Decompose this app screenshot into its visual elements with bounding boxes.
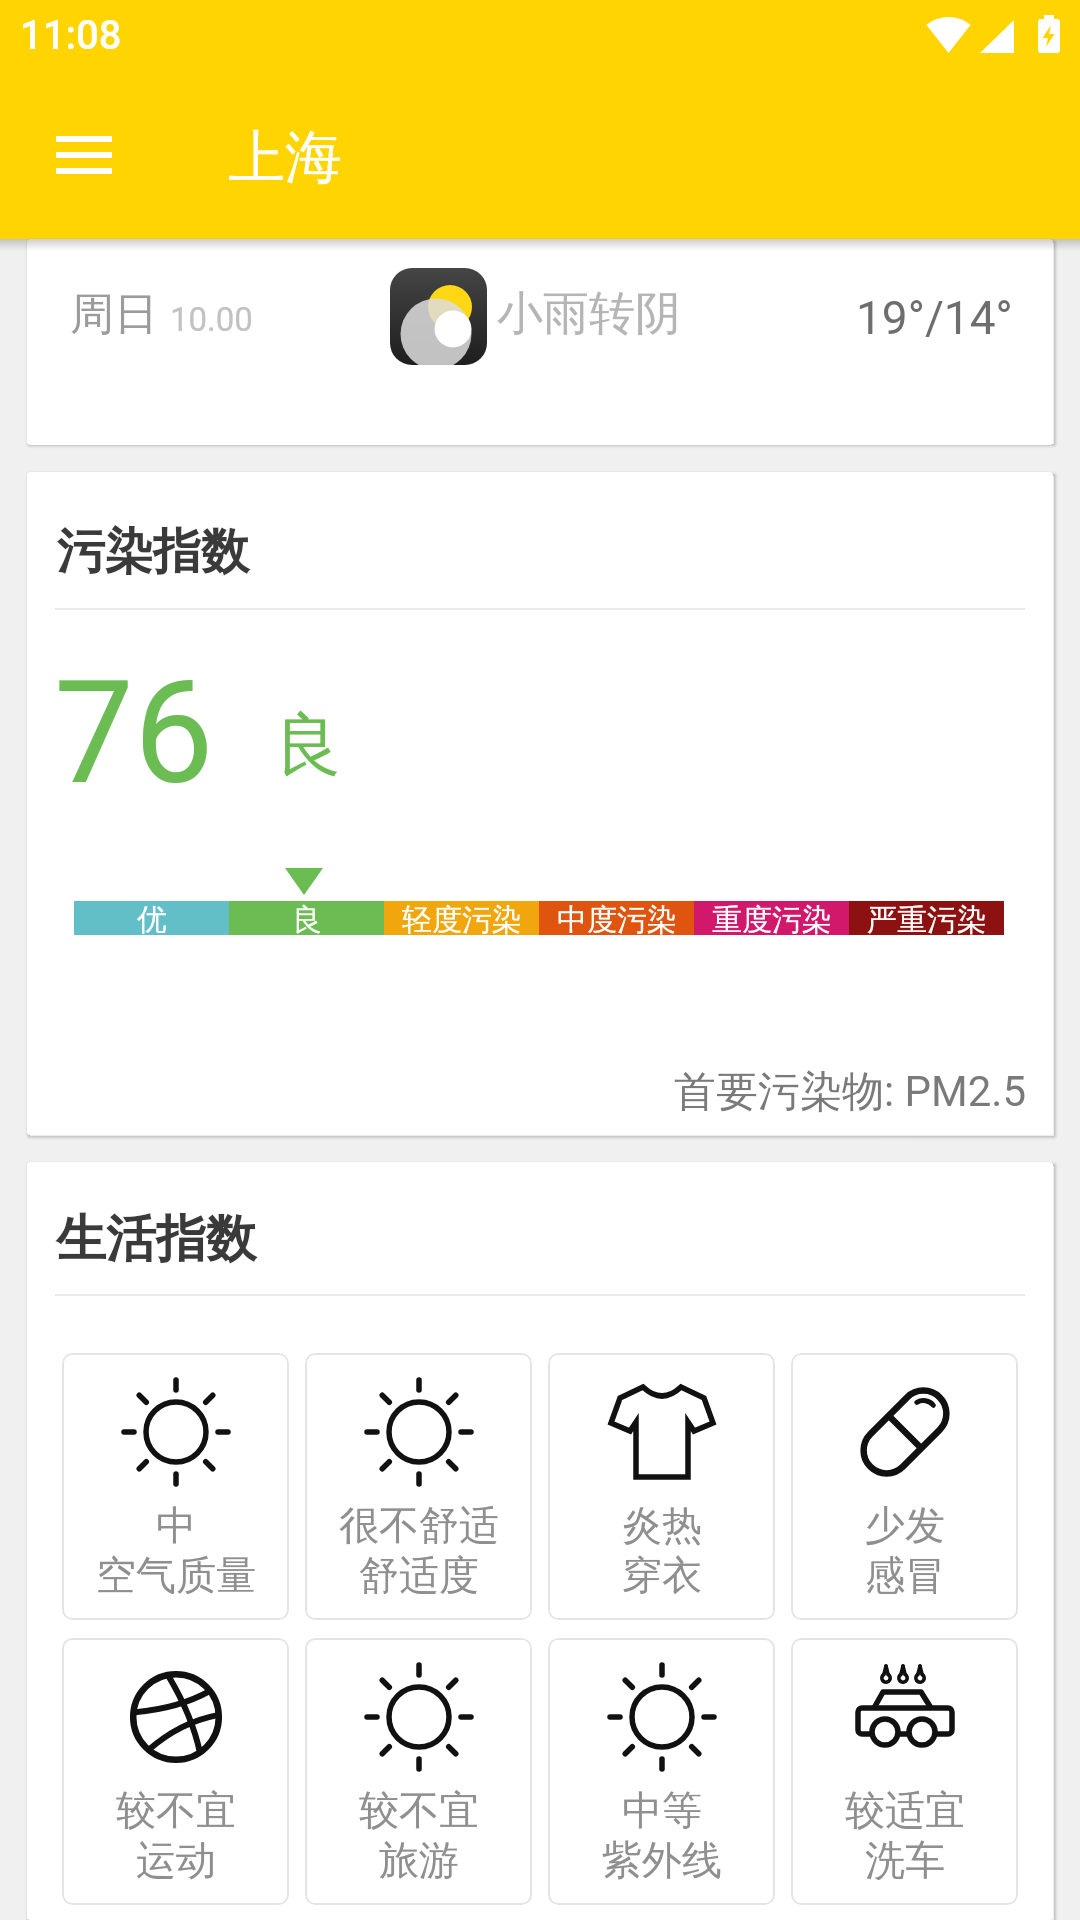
staticText: 污染指数 <box>57 522 249 582</box>
staticText: 穿衣 <box>622 1550 702 1600</box>
staticText: 很不舒适 <box>339 1500 499 1550</box>
staticText: 感冒 <box>865 1550 945 1600</box>
button[interactable]: 较适宜 <box>791 1638 1018 1905</box>
staticText: 良 <box>274 703 342 789</box>
staticText: 19°/14° <box>856 291 1013 345</box>
button[interactable]: 中 <box>62 1353 289 1620</box>
staticText: 周日 <box>70 287 158 342</box>
staticText: 优 <box>137 901 167 935</box>
button[interactable]: 较不宜 <box>305 1638 532 1905</box>
button[interactable]: 少发 <box>791 1353 1018 1620</box>
button[interactable]: 污染指数 <box>27 472 1053 1135</box>
staticText: 炎热 <box>622 1500 702 1550</box>
staticText: 良 <box>292 901 322 935</box>
staticText: 小雨转阴 <box>497 285 681 343</box>
staticText: 中 <box>156 1500 196 1550</box>
staticText: 首要污染物: PM2.5 <box>674 1066 1027 1119</box>
staticText: 轻度污染 <box>402 901 522 935</box>
staticText: 严重污染 <box>867 901 987 935</box>
staticText: 少发 <box>865 1500 945 1550</box>
staticText: 中度污染 <box>557 901 677 935</box>
button[interactable]: 较不宜 <box>62 1638 289 1905</box>
staticText: 较不宜 <box>116 1785 236 1835</box>
staticText: 舒适度 <box>359 1550 479 1600</box>
staticText: 11:08 <box>20 12 122 59</box>
staticText: 10.00 <box>170 300 253 339</box>
button[interactable]: 周日 <box>27 239 1053 445</box>
staticText: 生活指数 <box>56 1208 256 1271</box>
button[interactable]: 炎热 <box>548 1353 775 1620</box>
staticText: 运动 <box>136 1835 216 1885</box>
staticText: 中等 <box>622 1785 702 1835</box>
staticText: 较不宜 <box>359 1785 479 1835</box>
staticText: 上海 <box>228 122 342 194</box>
staticText: 旅游 <box>379 1835 459 1885</box>
button[interactable]: 很不舒适 <box>305 1353 532 1620</box>
staticText: 重度污染 <box>712 901 832 935</box>
staticText: 76 <box>54 650 214 816</box>
staticText: 空气质量 <box>96 1550 256 1600</box>
button[interactable] <box>41 122 127 190</box>
staticText: 较适宜 <box>845 1785 965 1835</box>
button[interactable]: 中等 <box>548 1638 775 1905</box>
staticText: 洗车 <box>865 1835 945 1885</box>
staticText: 紫外线 <box>602 1835 722 1885</box>
